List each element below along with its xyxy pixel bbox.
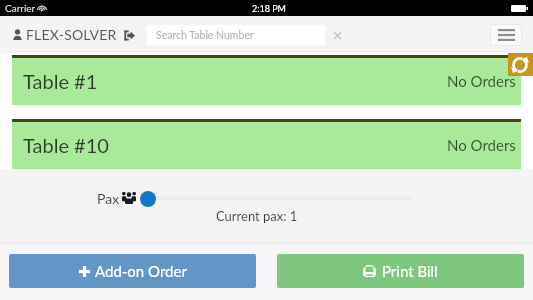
button[interactable]: Clear search [328,26,346,44]
button[interactable]: Sign out [120,26,138,44]
staticText: Table #1 [23,69,98,93]
button[interactable]: Search Table Number [147,25,325,45]
staticText: Add-on Order [95,262,187,280]
staticText: Search Table Number [156,29,254,42]
staticText: Current pax: 1 [216,208,298,224]
staticText: Carrier [5,2,36,14]
staticText: FLEX-SOLVER [26,26,117,43]
staticText: No Orders [447,136,516,154]
staticText: Pax [97,190,120,207]
button[interactable]: Table #1 [12,55,521,105]
staticText: Table #10 [23,133,109,157]
button[interactable]: Menu [491,25,521,45]
button[interactable]: Table #10 [12,119,521,169]
button[interactable]: Pax amount slider [140,191,156,207]
button[interactable]: Print Bill [277,254,524,288]
staticText: 2:18 PM [252,3,286,14]
staticText: No Orders [447,72,516,90]
staticText: Print Bill [382,262,438,280]
button[interactable]: Add-on Order [9,254,256,288]
button[interactable]: Refresh [508,53,533,76]
